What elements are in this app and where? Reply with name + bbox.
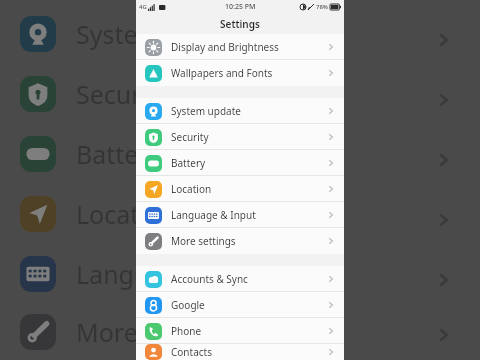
button[interactable]: Phone <box>136 318 344 344</box>
staticText: Contacts <box>171 345 212 359</box>
staticText: 10:25 PM <box>225 2 256 12</box>
staticText: Google <box>171 298 205 312</box>
staticText: Locati <box>76 197 146 231</box>
button[interactable]: Wallpapers and Fonts <box>136 60 344 86</box>
button[interactable]: Contacts <box>136 344 344 360</box>
button[interactable]: Security <box>136 124 344 150</box>
staticText: System <box>76 17 161 51</box>
button[interactable]: Display and Brightness <box>136 34 344 60</box>
button[interactable]: Battery <box>136 150 344 176</box>
staticText: Battery <box>171 156 206 170</box>
button[interactable]: System update <box>136 98 344 124</box>
staticText: Settings <box>220 17 260 31</box>
button[interactable]: Google <box>136 292 344 318</box>
staticText: Phone <box>171 324 202 338</box>
button[interactable]: Accounts & Sync <box>136 266 344 292</box>
button[interactable]: More settings <box>136 228 344 254</box>
staticText: Accounts & Sync <box>171 272 248 286</box>
staticText: Display and Brightness <box>171 40 279 54</box>
staticText: 4G <box>139 3 147 11</box>
staticText: 78% <box>316 3 328 11</box>
staticText: Location <box>171 182 212 196</box>
staticText: More <box>76 315 138 349</box>
staticText: Language & Input <box>171 208 256 222</box>
button[interactable]: Language & Input <box>136 202 344 228</box>
staticText: Security <box>171 130 209 144</box>
staticText: Securi <box>76 77 149 111</box>
staticText: Wallpapers and Fonts <box>171 66 273 80</box>
staticText: Batter <box>76 137 149 171</box>
staticText: System update <box>171 104 241 118</box>
button[interactable]: Location <box>136 176 344 202</box>
staticText: Langu <box>76 257 150 291</box>
staticText: More settings <box>171 234 236 248</box>
